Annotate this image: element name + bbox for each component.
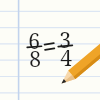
- staticText: 3: [59, 26, 71, 55]
- staticText: 4: [60, 44, 72, 73]
- staticText: 6: [28, 27, 40, 56]
- staticText: 8: [29, 45, 41, 74]
